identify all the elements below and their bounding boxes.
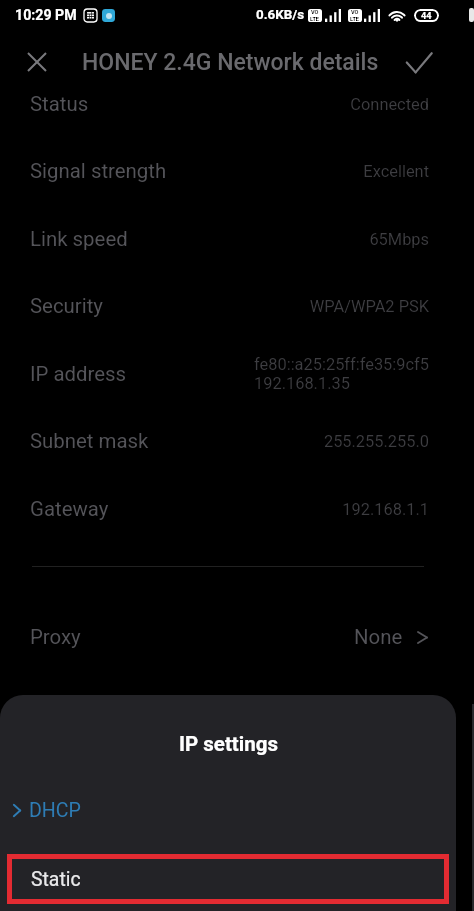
staticText: Subnet mask <box>30 429 149 453</box>
staticText: fe80::a25:25ff:fe35:9cf5 <box>254 355 429 374</box>
staticText: LTE <box>310 16 320 22</box>
staticText: Connected <box>350 95 429 114</box>
button[interactable]: Security <box>0 272 474 340</box>
button[interactable]: Close <box>13 38 61 86</box>
staticText: HONEY 2.4G Network details <box>82 49 379 76</box>
staticText: Status <box>30 92 89 116</box>
staticText: Proxy <box>30 625 81 649</box>
staticText: VO <box>351 9 359 16</box>
button[interactable]: Signal strength <box>0 137 474 205</box>
staticText: VO <box>311 9 319 16</box>
staticText: 192.168.1.35 <box>254 374 350 393</box>
button[interactable]: Gateway <box>0 475 474 543</box>
staticText: Signal strength <box>30 159 167 183</box>
button[interactable]: IP address <box>0 340 474 408</box>
staticText: 10:29 PM <box>15 7 77 24</box>
staticText: Gateway <box>30 497 109 521</box>
button[interactable]: Link speed <box>0 205 474 273</box>
staticText: IP settings <box>179 732 278 756</box>
staticText: Security <box>30 294 104 318</box>
button[interactable]: Subnet mask <box>0 407 474 475</box>
staticText: None <box>354 625 403 649</box>
button[interactable]: Proxy <box>0 607 474 667</box>
button[interactable]: DHCP <box>0 782 456 838</box>
staticText: 65Mbps <box>369 230 429 249</box>
staticText: LTE <box>350 16 360 22</box>
staticText: WPA/WPA2 PSK <box>309 297 429 316</box>
staticText: 0.6KB/s <box>256 7 305 23</box>
staticText: Excellent <box>363 162 429 181</box>
staticText: Static <box>31 868 81 891</box>
staticText: IP address <box>30 362 127 386</box>
staticText: 44 <box>421 10 432 21</box>
staticText: Link speed <box>30 227 128 251</box>
staticText: 255.255.255.0 <box>323 432 429 451</box>
button[interactable]: Status <box>0 70 474 138</box>
button[interactable]: Static <box>7 854 449 904</box>
staticText: 192.168.1.1 <box>342 500 429 519</box>
button[interactable]: Save <box>395 38 443 86</box>
staticText: DHCP <box>29 799 81 822</box>
